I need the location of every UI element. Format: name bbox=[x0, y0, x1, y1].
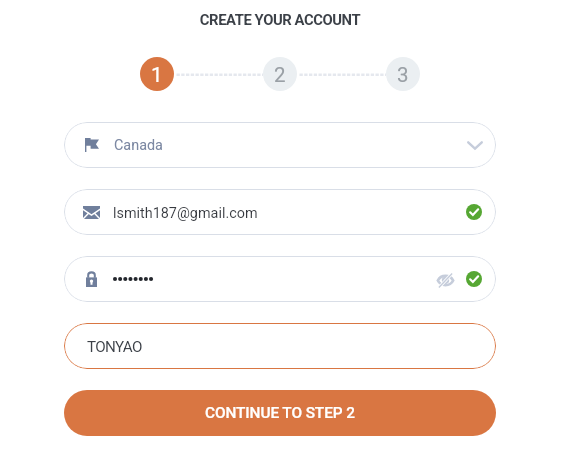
button[interactable]: Show password bbox=[64, 256, 496, 302]
staticText: CREATE YOUR ACCOUNT bbox=[0, 11, 560, 28]
staticText: Canada bbox=[114, 137, 163, 154]
staticText: TONYAO bbox=[87, 338, 142, 356]
button[interactable]: 1 bbox=[140, 57, 174, 91]
button[interactable]: lsmith187@gmail.com bbox=[64, 189, 496, 235]
button[interactable]: 2 bbox=[263, 57, 297, 91]
button[interactable]: Open country list bbox=[455, 125, 495, 165]
staticText: CONTINUE TO STEP 2 bbox=[205, 404, 355, 422]
button[interactable]: CONTINUE TO STEP 2 bbox=[64, 390, 496, 436]
button[interactable]: TONYAO bbox=[64, 323, 496, 369]
button[interactable]: Show password bbox=[428, 263, 462, 297]
staticText: 3 bbox=[397, 63, 409, 87]
button[interactable]: 3 bbox=[386, 57, 420, 91]
staticText: 1 bbox=[151, 63, 163, 87]
staticText: lsmith187@gmail.com bbox=[113, 205, 258, 222]
staticText: 2 bbox=[274, 63, 286, 87]
button[interactable]: Canada bbox=[64, 122, 496, 168]
